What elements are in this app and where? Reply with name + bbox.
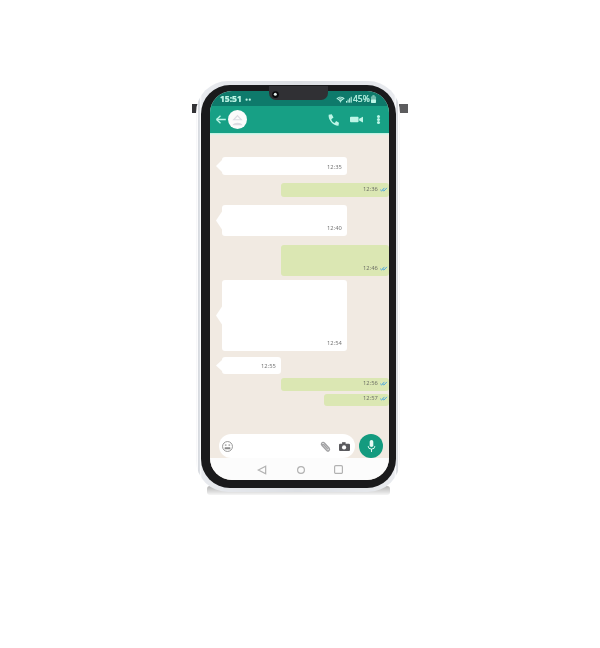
button[interactable]: Record voice message xyxy=(359,434,383,458)
button[interactable]: Recent apps xyxy=(328,459,349,480)
button[interactable]: Back xyxy=(212,106,230,133)
button[interactable]: Video call xyxy=(345,106,368,133)
staticText: 12:55 xyxy=(261,362,276,370)
button[interactable]: Profile photo xyxy=(228,110,247,129)
staticText: 12:57 xyxy=(363,394,378,402)
staticText: 12:46 xyxy=(363,264,378,272)
staticText: 15:51 xyxy=(220,93,242,105)
staticText: 12:54 xyxy=(327,339,342,347)
staticText: 12:36 xyxy=(363,185,378,193)
button[interactable]: 12:57 xyxy=(324,394,389,406)
staticText: 12:35 xyxy=(327,163,342,171)
button[interactable]: More options xyxy=(369,106,388,133)
button[interactable]: Back xyxy=(251,459,272,480)
button[interactable]: Home xyxy=(290,459,311,480)
staticText: 12:40 xyxy=(327,224,342,232)
button[interactable]: 12:46 xyxy=(281,245,389,276)
button[interactable]: 12:40 xyxy=(216,205,347,236)
button[interactable] xyxy=(219,434,355,458)
button[interactable]: 12:56 xyxy=(281,378,389,391)
button[interactable]: 12:35 xyxy=(216,157,347,175)
button[interactable]: 12:54 xyxy=(216,280,347,351)
button[interactable]: 12:55 xyxy=(216,357,281,374)
button[interactable]: Call xyxy=(322,106,345,133)
staticText: 45% xyxy=(353,93,370,105)
button[interactable]: 12:36 xyxy=(281,183,389,197)
staticText: 12:56 xyxy=(363,379,378,387)
